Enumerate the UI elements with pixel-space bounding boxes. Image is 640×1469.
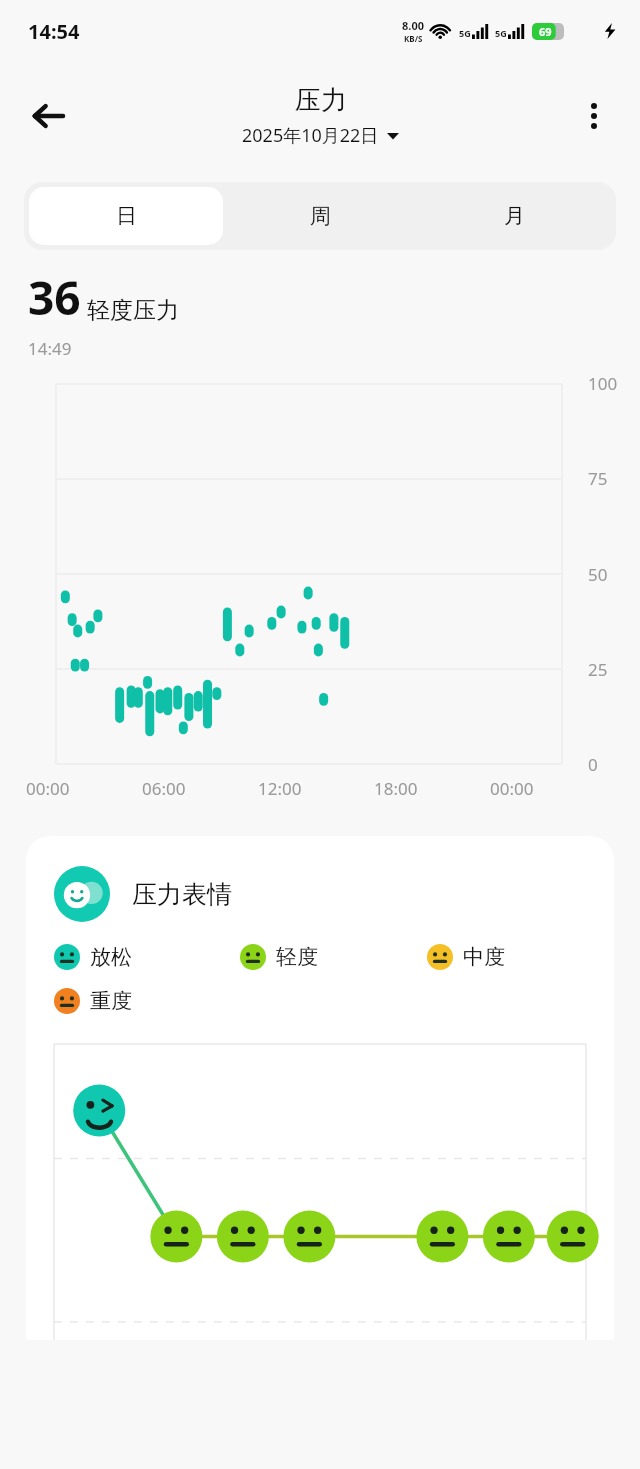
staticText: 2025年10月22日 <box>242 123 379 148</box>
staticText: 14:49 <box>28 337 72 360</box>
staticText: 中度 <box>463 944 505 970</box>
staticText: 5G <box>459 27 471 39</box>
staticText: 12:00 <box>258 777 302 800</box>
staticText: 36 <box>28 266 81 329</box>
staticText: 压力表情 <box>132 879 232 910</box>
staticText: 00:00 <box>26 777 70 800</box>
staticText: 轻度压力 <box>87 296 179 325</box>
staticText: 放松 <box>90 944 132 970</box>
staticText: 日 <box>116 203 137 229</box>
staticText: 8.00 <box>402 18 424 33</box>
button[interactable]: More options <box>568 90 620 142</box>
button[interactable]: 日 <box>29 187 223 245</box>
staticText: 100 <box>588 372 618 395</box>
button[interactable]: 月 <box>417 187 611 245</box>
button[interactable]: 周 <box>223 187 417 245</box>
staticText: 06:00 <box>142 777 186 800</box>
staticText: KB/S <box>404 33 423 44</box>
staticText: 75 <box>588 467 608 490</box>
staticText: 5G <box>495 27 507 39</box>
staticText: 18:00 <box>374 777 418 800</box>
button[interactable]: Back <box>20 88 76 144</box>
staticText: 周 <box>310 203 331 229</box>
staticText: 25 <box>588 658 608 681</box>
staticText: 重度 <box>90 988 132 1014</box>
staticText: 00:00 <box>490 777 534 800</box>
staticText: 50 <box>588 563 608 586</box>
staticText: 轻度 <box>276 944 318 970</box>
staticText: 月 <box>504 203 525 229</box>
staticText: 压力 <box>295 84 347 117</box>
button[interactable]: 压力表情 <box>26 836 614 1340</box>
staticText: 14:54 <box>28 18 80 45</box>
button[interactable]: 压力 <box>242 84 399 148</box>
staticText: 69 <box>539 24 552 39</box>
staticText: 0 <box>588 753 598 776</box>
